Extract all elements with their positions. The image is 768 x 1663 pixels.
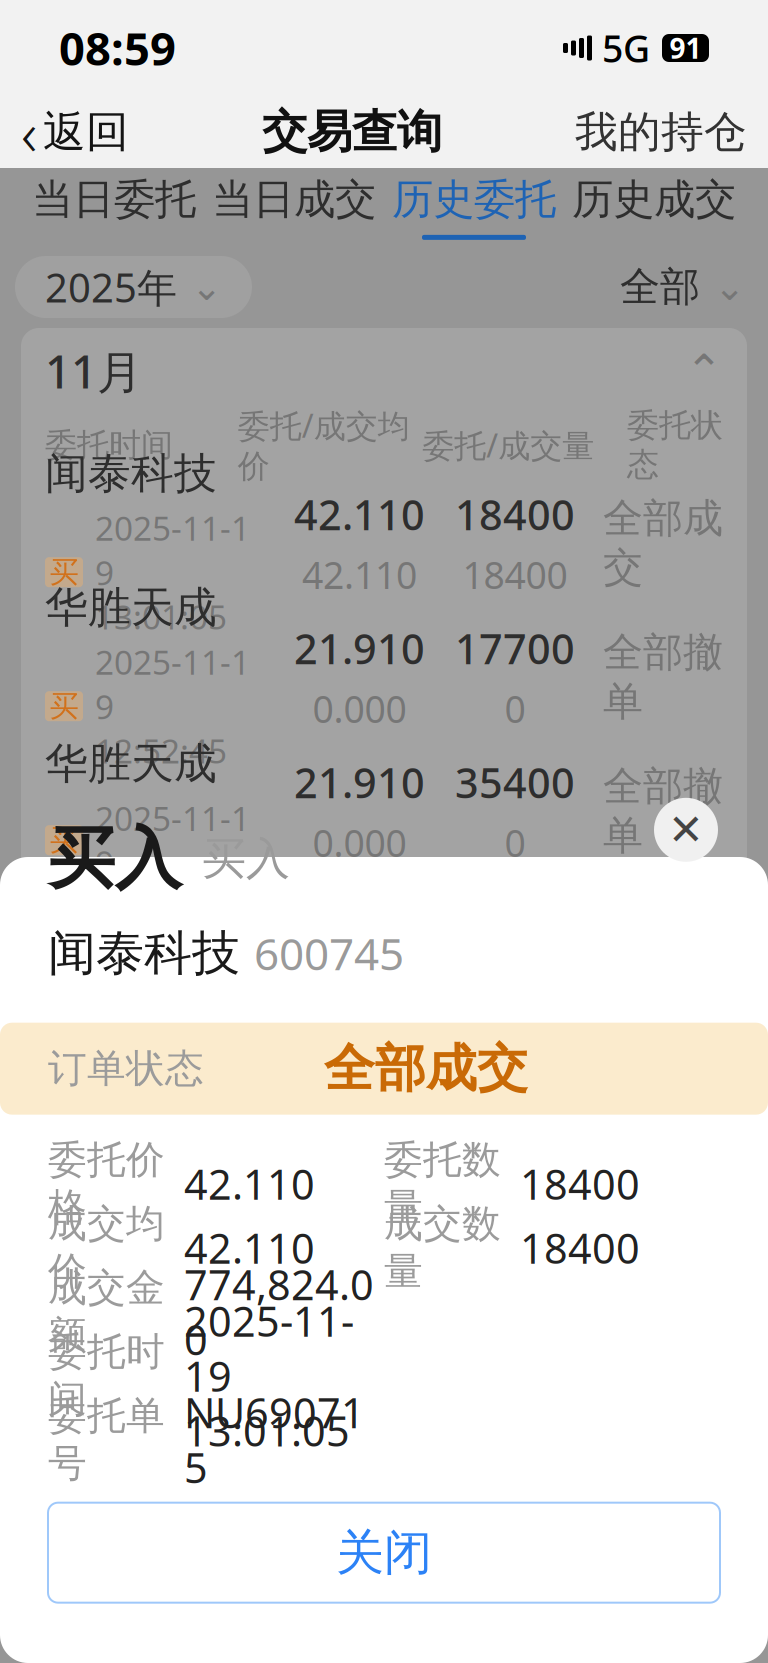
button[interactable]: 全部	[612, 256, 753, 318]
staticText: 42.110	[302, 550, 417, 599]
staticText: 18400	[455, 487, 575, 542]
staticText: NU690715	[184, 1385, 365, 1495]
staticText: 18400	[520, 1156, 640, 1211]
staticText: 2025-11-19 13:01:05	[184, 1293, 354, 1458]
staticText: 买	[49, 554, 78, 590]
staticText: 委托/成交均价	[238, 404, 410, 486]
staticText: 全部	[620, 262, 700, 311]
staticText: 委托数量	[384, 1136, 501, 1231]
button[interactable]: 华胜天成	[21, 744, 747, 878]
staticText: 委托时间	[48, 1328, 165, 1423]
staticText: 21.910	[294, 755, 425, 810]
button[interactable]: 历史委托	[384, 166, 564, 248]
staticText: 买	[49, 822, 78, 858]
staticText: 返回	[43, 106, 129, 158]
staticText: 华胜天成	[45, 581, 217, 634]
button[interactable]: 华胜天成	[21, 610, 747, 744]
button[interactable]: 闻泰科技	[21, 476, 747, 610]
staticText: 买入	[48, 818, 182, 900]
button[interactable]: ‹	[17, 83, 133, 181]
staticText: 委托/成交量	[422, 424, 594, 466]
staticText: 0.000	[312, 818, 406, 867]
button[interactable]: 当日成交	[204, 166, 384, 248]
staticText: ⌃	[685, 345, 723, 397]
staticText: 11月	[45, 341, 142, 401]
button[interactable]: 当日委托	[24, 166, 204, 248]
staticText: 委托价格	[48, 1136, 165, 1231]
staticText: 成交数量	[384, 1200, 501, 1295]
staticText: 全部成交	[603, 494, 723, 592]
staticText: 历史委托	[392, 174, 556, 225]
staticText: 委托状态	[627, 406, 723, 484]
staticText: 08:59	[59, 18, 176, 78]
staticText: ‹	[21, 91, 37, 173]
staticText: 18400	[462, 550, 567, 599]
button[interactable]: 2025年	[15, 256, 252, 318]
staticText: 委托时间	[45, 425, 173, 465]
staticText: ✕	[668, 806, 704, 854]
button[interactable]: 关闭	[654, 798, 718, 862]
staticText: ⌄	[191, 266, 222, 308]
staticText: 闻泰科技	[45, 447, 217, 500]
staticText: 成交金额	[48, 1264, 165, 1359]
staticText: 全部撤单	[603, 628, 723, 726]
staticText: 全部成交	[324, 1038, 528, 1100]
staticText: 当日委托	[32, 174, 196, 225]
staticText: 2025-11-19	[95, 796, 250, 884]
staticText: 91	[669, 29, 701, 67]
button[interactable]: 历史成交	[564, 166, 744, 248]
staticText: 42.110	[184, 1220, 315, 1275]
staticText: 600745	[254, 924, 404, 982]
staticText: 全部撤单	[603, 762, 723, 860]
staticText: 我的持仓	[575, 106, 747, 158]
staticText: 2025年	[45, 260, 177, 313]
staticText: 2025-11-19 13:01:05	[95, 506, 250, 639]
staticText: 0.000	[312, 684, 406, 733]
staticText: 35400	[455, 755, 575, 810]
staticText: 42.110	[184, 1156, 315, 1211]
staticText: ⌄	[714, 266, 745, 308]
staticText: 0	[504, 818, 525, 867]
button[interactable]: 我的持仓	[571, 98, 751, 166]
staticText: 闻泰科技	[48, 924, 240, 983]
staticText: 成交均价	[48, 1200, 165, 1295]
staticText: 18400	[520, 1220, 640, 1275]
staticText: 2025-11-19 12:52:45	[95, 640, 250, 773]
staticText: 买入	[202, 832, 290, 886]
staticText: 历史成交	[572, 174, 736, 225]
staticText: 订单状态	[48, 1045, 204, 1092]
staticText: 0	[504, 684, 525, 733]
staticText: 774,824.00	[184, 1257, 374, 1367]
staticText: 当日成交	[212, 174, 376, 225]
button[interactable]: 关闭	[48, 1503, 720, 1603]
staticText: 交易查询	[262, 104, 442, 160]
staticText: 委托单号	[48, 1392, 165, 1487]
staticText: 42.110	[294, 487, 425, 542]
staticText: 5G	[602, 23, 650, 73]
staticText: 17700	[455, 621, 575, 676]
staticText: 关闭	[336, 1523, 432, 1582]
staticText: 买	[49, 688, 78, 724]
staticText: 华胜天成	[45, 737, 217, 790]
staticText: 21.910	[294, 621, 425, 676]
